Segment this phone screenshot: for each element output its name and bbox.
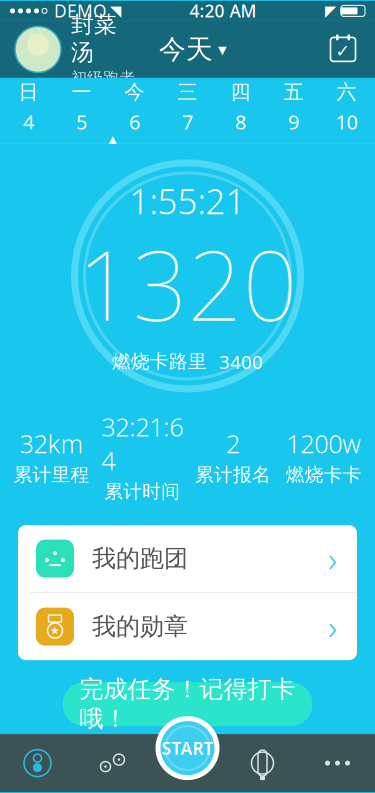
staticText: 四 [230, 80, 250, 104]
button[interactable]: 日 [2, 85, 55, 129]
button[interactable]: Profile [0, 734, 75, 792]
button[interactable]: Routes [75, 734, 150, 792]
staticText: 今 [124, 80, 144, 104]
staticText: 32:21:64 [101, 410, 183, 477]
button[interactable]: 五 [267, 85, 320, 129]
button[interactable]: 一 [55, 85, 108, 129]
staticText: 10 [335, 108, 357, 135]
staticText: 我的勋章 [92, 612, 188, 641]
staticText: 1320 [77, 220, 297, 347]
button[interactable]: Start [151, 712, 223, 784]
staticText: 日 [18, 80, 38, 104]
staticText: 燃烧卡路里 [112, 350, 207, 373]
button[interactable]: 今 [108, 85, 161, 129]
button[interactable]: More [300, 734, 375, 792]
button[interactable]: Calendar [321, 27, 365, 71]
staticText: ✓ [335, 41, 350, 61]
button[interactable]: 四 [214, 85, 267, 129]
button[interactable]: 三 [161, 85, 214, 129]
staticText: 2 [226, 427, 240, 460]
staticText: 完成任务！记得打卡哦！ [79, 675, 295, 734]
staticText: 6 [129, 108, 140, 135]
button[interactable]: 完成任务！记得打卡哦！ [62, 682, 312, 726]
staticText: 3400 [219, 349, 263, 374]
staticText: ◤ [325, 3, 336, 19]
staticText: ▾ [218, 40, 227, 59]
staticText: 三 [177, 80, 197, 104]
staticText: › [328, 536, 337, 582]
staticText: 五 [283, 80, 303, 104]
staticText: 今天 [159, 33, 213, 66]
staticText: ★ [50, 625, 60, 637]
staticText: 1:55:21 [129, 178, 245, 224]
staticText: 9 [288, 108, 299, 135]
staticText: 初级跑者 [71, 68, 135, 88]
staticText: ▲ [107, 132, 118, 149]
staticText: › [328, 604, 337, 650]
staticText: START [161, 737, 213, 760]
staticText: 8 [235, 108, 246, 135]
staticText: 7 [182, 108, 193, 135]
staticText: 一 [71, 80, 91, 104]
staticText: 燃烧卡卡 [286, 463, 362, 486]
button[interactable]: 今天 [151, 27, 235, 72]
staticText: 累计报名 [195, 463, 271, 486]
staticText: ◥ [110, 3, 121, 19]
button[interactable]: Discover [225, 734, 300, 792]
button[interactable]: ★ [18, 593, 357, 660]
staticText: DEMO [54, 0, 107, 22]
staticText: 六 [336, 80, 356, 104]
staticText: 4 [23, 108, 34, 135]
staticText: 1200w [286, 427, 361, 460]
staticText: 32km [19, 427, 83, 460]
staticText: 我的跑团 [92, 544, 188, 573]
staticText: 4:20 AM [189, 0, 256, 22]
staticText: 累计里程 [13, 463, 89, 486]
button[interactable]: 六 [320, 85, 373, 129]
staticText: 累计时间 [104, 480, 180, 503]
staticText: 封菜汤 [71, 11, 117, 66]
button[interactable]: 我的跑团 [18, 525, 357, 592]
staticText: 5 [76, 108, 87, 135]
